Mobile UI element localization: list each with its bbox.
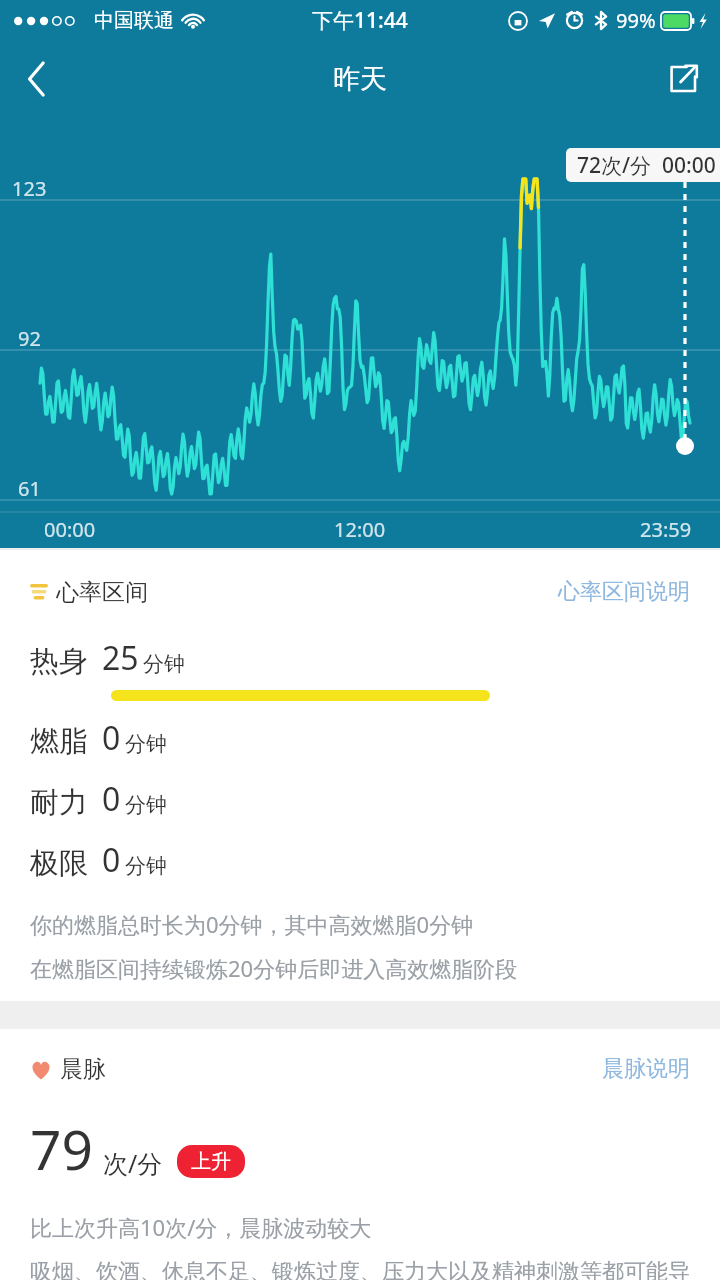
staticText: 比上次升高10次/分，晨脉波动较大 <box>30 1212 372 1242</box>
staticText: 热身 <box>30 643 88 680</box>
staticText: 123 <box>12 175 47 202</box>
staticText: 79 <box>30 1111 93 1186</box>
staticText: 吸烟、饮酒、休息不足、锻炼过度、压力大以及精神刺激等都可能导致晨脉短期上升 <box>30 1258 696 1280</box>
staticText: 00:00 <box>662 151 716 180</box>
button[interactable]: 晨脉说明 <box>596 1049 696 1089</box>
staticText: 中国联通 <box>94 8 174 33</box>
staticText: 分钟 <box>143 651 185 677</box>
staticText: 12:00 <box>334 516 386 543</box>
staticText: 在燃脂区间持续锻炼20分钟后即进入高效燃脂阶段 <box>30 953 518 983</box>
staticText: 耐力 <box>30 784 88 821</box>
staticText: 61 <box>18 475 41 502</box>
staticText: 极限 <box>30 845 88 882</box>
staticText: 下午11:44 <box>312 6 408 35</box>
staticText: 昨天 <box>333 62 387 96</box>
staticText: 分钟 <box>125 792 167 818</box>
staticText: 0 <box>102 777 121 821</box>
staticText: 上升 <box>191 1149 231 1174</box>
button[interactable]: Back <box>0 40 74 118</box>
staticText: 99% <box>616 7 656 34</box>
staticText: 92 <box>18 325 41 352</box>
staticText: 25 <box>102 636 139 680</box>
staticText: 心率区间说明 <box>558 578 690 606</box>
staticText: 72次/分 <box>577 151 652 180</box>
staticText: 燃脂 <box>30 723 88 760</box>
staticText: 你的燃脂总时长为0分钟，其中高效燃脂0分钟 <box>30 909 474 939</box>
staticText: 心率区间 <box>56 578 148 607</box>
staticText: 23:59 <box>640 516 692 543</box>
staticText: 0 <box>102 716 121 760</box>
staticText: 0 <box>102 838 121 882</box>
staticText: 晨脉说明 <box>602 1055 690 1083</box>
staticText: 晨脉 <box>60 1055 106 1084</box>
staticText: 00:00 <box>44 516 96 543</box>
staticText: 次/分 <box>103 1146 163 1180</box>
staticText: 分钟 <box>125 853 167 879</box>
button[interactable]: Share <box>646 40 720 118</box>
staticText: 分钟 <box>125 731 167 757</box>
button[interactable]: 心率区间说明 <box>552 572 696 612</box>
